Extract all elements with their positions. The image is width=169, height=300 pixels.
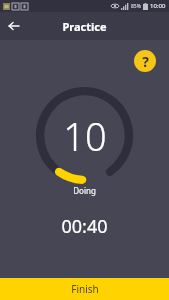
button[interactable]: Help [134, 50, 156, 72]
button[interactable]: Back [0, 12, 28, 40]
staticText: Practice [62, 19, 107, 34]
staticText: 10:00 [150, 2, 166, 10]
button[interactable]: Finish [0, 278, 169, 300]
staticText: 10 [63, 110, 107, 162]
staticText: ? [142, 52, 149, 71]
staticText: Finish [71, 282, 99, 296]
staticText: 00:40 [61, 214, 108, 239]
staticText: 85% [131, 3, 141, 10]
staticText: Doing [73, 185, 96, 196]
